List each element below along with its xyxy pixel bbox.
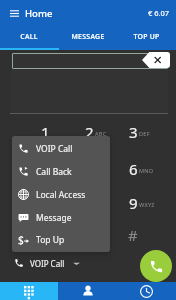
button[interactable]: 1	[23, 116, 67, 148]
staticText: VOIP Call	[30, 258, 65, 269]
staticText: Call Back	[36, 166, 72, 178]
staticText: 9	[129, 193, 138, 213]
staticText: DEF	[139, 130, 150, 137]
staticText: CALL	[20, 32, 38, 41]
button[interactable]: Top Up	[12, 229, 110, 251]
staticText: MESSAGE	[71, 32, 105, 41]
button[interactable]: Backspace	[142, 52, 170, 68]
button[interactable]: Dial pad	[0, 282, 58, 300]
button[interactable]: 7	[23, 187, 67, 219]
staticText: 4	[41, 159, 50, 179]
staticText: GHI	[51, 167, 62, 174]
button[interactable]: *	[23, 219, 67, 251]
button[interactable]: Call	[140, 250, 172, 282]
staticText: 1	[41, 122, 50, 142]
button[interactable]: 4	[23, 153, 67, 185]
staticText: 6	[129, 159, 138, 179]
button[interactable]: Open navigation menu	[5, 4, 23, 22]
staticText: Message	[36, 212, 72, 224]
button[interactable]: Local Access	[12, 183, 110, 206]
staticText: Top Up	[36, 234, 65, 246]
button[interactable]: TOP UP	[117, 26, 176, 50]
button[interactable]: VOIP Call	[12, 137, 110, 160]
button[interactable]: 3	[111, 116, 155, 148]
button[interactable]: MESSAGE	[58, 26, 117, 50]
staticText: 2	[85, 122, 94, 142]
staticText: ABC	[95, 130, 107, 137]
staticText: 7	[41, 193, 50, 213]
staticText: #	[128, 225, 138, 245]
button[interactable]: CALL	[0, 26, 58, 50]
staticText: WXYZ	[139, 201, 155, 208]
staticText: *	[41, 225, 50, 245]
button[interactable]: Call Back	[12, 160, 110, 183]
button[interactable]: 9	[111, 187, 155, 219]
staticText: MNO	[139, 167, 154, 174]
button[interactable]: VOIP Call	[14, 254, 80, 272]
button[interactable]: #	[111, 219, 155, 251]
button[interactable]: 5	[67, 153, 111, 185]
button[interactable]: Recent calls	[117, 282, 176, 300]
button[interactable]: Message	[12, 206, 110, 229]
staticText: TOP UP	[133, 32, 160, 41]
button[interactable]: 0	[67, 219, 111, 251]
button[interactable]: 6	[111, 153, 155, 185]
staticText: € 6.07	[148, 8, 170, 18]
staticText: Local Access	[36, 189, 86, 201]
staticText: VOIP Call	[36, 143, 73, 155]
staticText: Home	[25, 7, 53, 20]
button[interactable]: 2	[67, 116, 111, 148]
button[interactable]: 8	[67, 187, 111, 219]
staticText: 3	[129, 122, 138, 142]
button[interactable]: Contacts	[58, 282, 117, 300]
